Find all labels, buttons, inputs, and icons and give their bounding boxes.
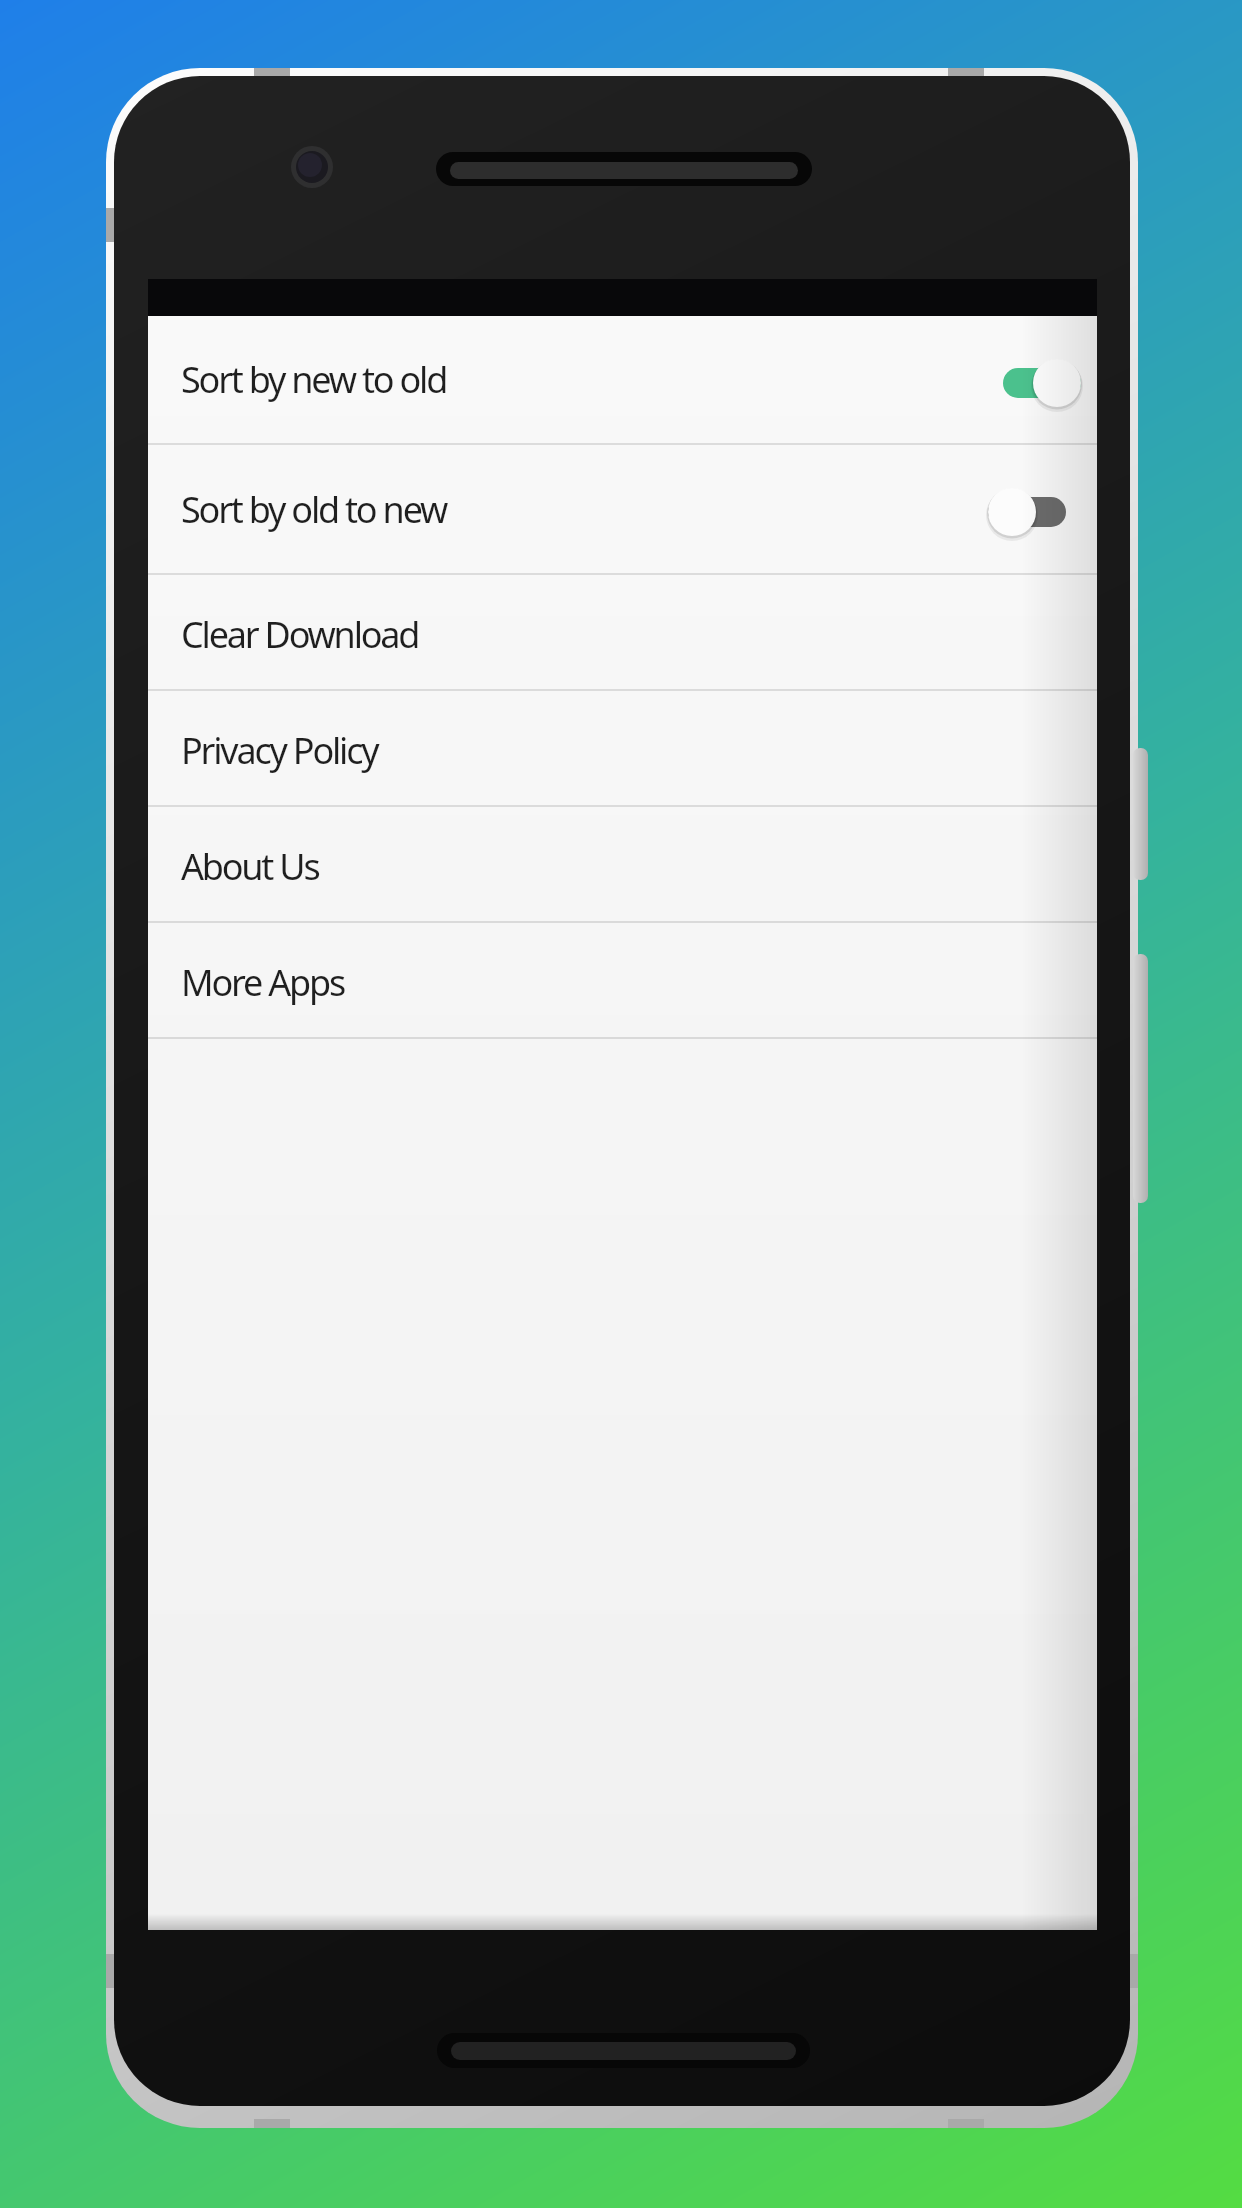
staticText: About Us xyxy=(181,842,319,891)
staticText: More Apps xyxy=(181,958,344,1007)
staticText: Sort by new to old xyxy=(181,355,447,404)
button[interactable]: Clear Download xyxy=(148,575,1097,689)
button[interactable]: More Apps xyxy=(148,923,1097,1037)
button[interactable] xyxy=(988,359,1081,407)
staticText: Clear Download xyxy=(181,610,419,659)
button[interactable]: Sort by old to new xyxy=(148,445,1097,573)
button[interactable] xyxy=(988,488,1081,536)
button[interactable]: Sort by new to old xyxy=(148,316,1097,443)
staticText: Privacy Policy xyxy=(181,726,378,775)
button[interactable]: Privacy Policy xyxy=(148,691,1097,805)
button[interactable]: About Us xyxy=(148,807,1097,921)
staticText: Sort by old to new xyxy=(181,485,447,534)
